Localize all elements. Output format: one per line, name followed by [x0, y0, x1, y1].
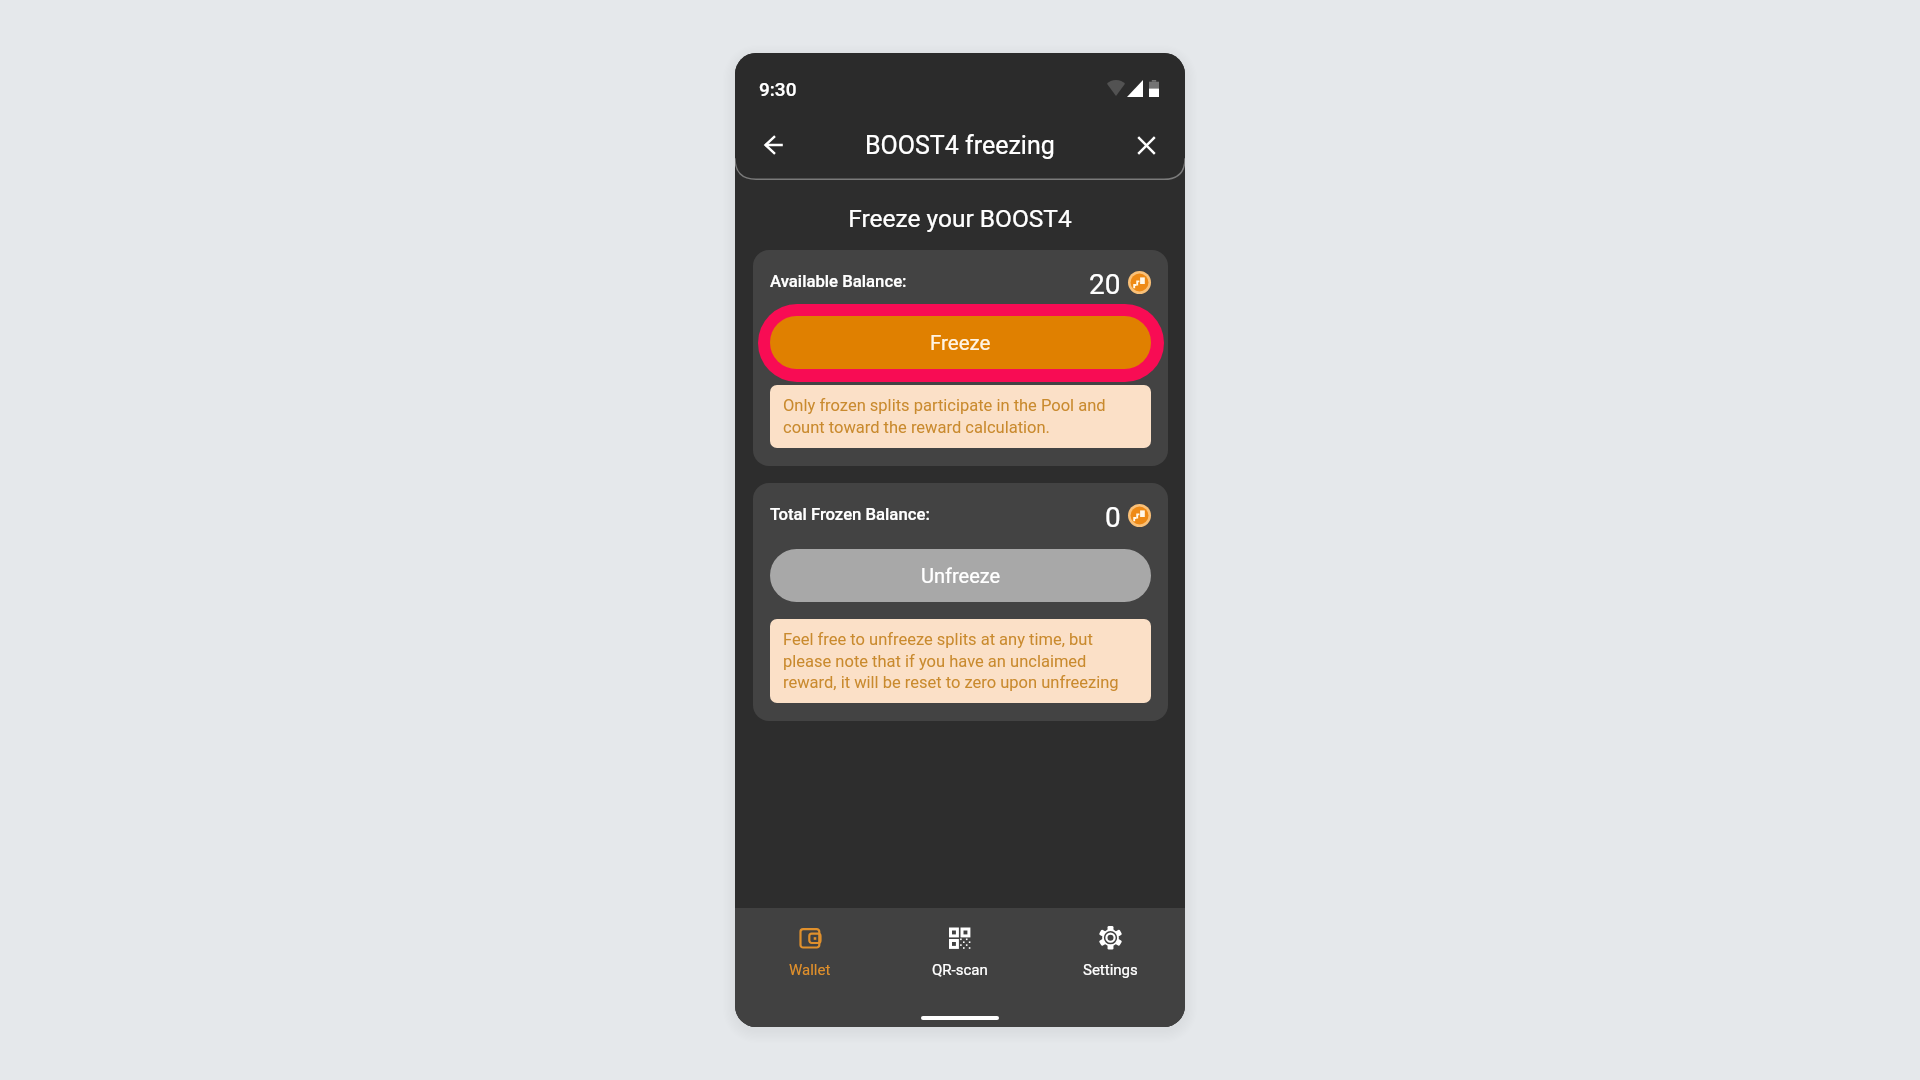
staticText: BOOST4 freezing [865, 131, 1055, 160]
staticText: Only frozen splits participate in the Po… [783, 396, 1144, 437]
staticText: 20 [1089, 268, 1121, 296]
staticText: Unfreeze [921, 564, 1001, 587]
button[interactable]: Wallet [735, 926, 885, 978]
staticText: 9:30 [759, 78, 797, 100]
staticText: Settings [1083, 961, 1138, 978]
staticText: Feel free to unfreeze splits at any time… [783, 630, 1144, 692]
button[interactable]: Close [1123, 122, 1169, 168]
button[interactable]: QR-scan [885, 926, 1035, 978]
button[interactable]: Unfreeze [770, 549, 1151, 602]
staticText: Wallet [789, 961, 831, 978]
button[interactable]: Freeze [770, 316, 1151, 369]
button[interactable]: Settings [1035, 926, 1185, 978]
staticText: Available Balance: [770, 272, 907, 292]
button[interactable]: Back [751, 122, 797, 168]
staticText: Freeze [930, 331, 991, 355]
staticText: 0 [1105, 501, 1121, 529]
staticText: Total Frozen Balance: [770, 505, 930, 525]
staticText: QR-scan [932, 961, 988, 978]
staticText: Freeze your BOOST4 [848, 204, 1072, 233]
